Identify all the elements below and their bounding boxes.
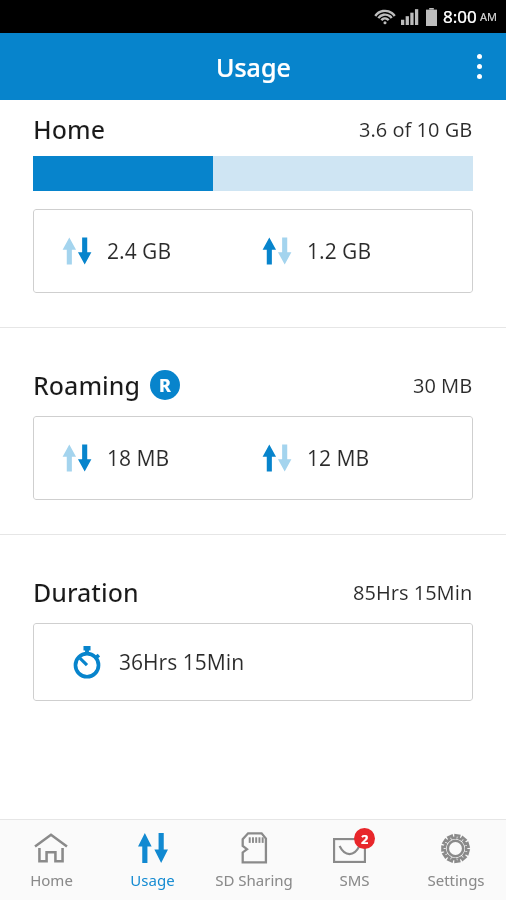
staticText: Settings xyxy=(427,870,485,890)
staticText: SD Sharing xyxy=(215,870,293,890)
staticText: 2.4 GB xyxy=(107,237,172,266)
staticText: Usage xyxy=(216,50,291,84)
staticText: 85Hrs 15Min xyxy=(353,579,473,606)
staticText: R xyxy=(159,373,171,398)
staticText: AM xyxy=(480,9,498,24)
button[interactable]: Home xyxy=(0,820,102,900)
staticText: 3.6 of 10 GB xyxy=(359,116,473,143)
staticText: 36Hrs 15Min xyxy=(119,648,245,677)
staticText: SMS xyxy=(339,870,370,890)
button[interactable]: SD Sharing xyxy=(203,820,304,900)
staticText: Home xyxy=(30,870,73,890)
staticText: 2 xyxy=(361,830,369,848)
staticText: 1.2 GB xyxy=(307,237,372,266)
staticText: Usage xyxy=(130,870,175,890)
button[interactable]: Usage xyxy=(102,820,203,900)
button[interactable]: 2 xyxy=(304,820,405,900)
button[interactable]: 2.4 GB xyxy=(33,209,473,293)
staticText: 8:00 xyxy=(443,5,477,28)
button[interactable]: Settings xyxy=(405,820,506,900)
staticText: 30 MB xyxy=(413,372,473,399)
staticText: Home xyxy=(33,112,106,146)
staticText: 12 MB xyxy=(307,444,370,473)
button[interactable]: 36Hrs 15Min xyxy=(33,623,473,701)
button[interactable]: 18 MB xyxy=(33,416,473,500)
staticText: Roaming xyxy=(33,368,140,402)
staticText: 18 MB xyxy=(107,444,170,473)
staticText: Duration xyxy=(33,575,139,609)
button[interactable]: More options xyxy=(452,33,506,100)
